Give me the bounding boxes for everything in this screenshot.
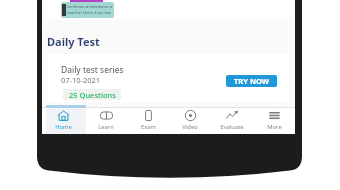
- staticText: Evaluate: [220, 123, 244, 131]
- staticText: 07-10-2021: [61, 75, 101, 85]
- staticText: Exam: [141, 123, 156, 131]
- staticText: Home: [55, 123, 72, 131]
- other: Home: [57, 110, 70, 121]
- other: Learn: [100, 110, 113, 121]
- other: Video: [184, 110, 197, 121]
- staticText: Daily test series: [61, 64, 124, 76]
- button[interactable]: Certificate of attendance is: [47, 0, 290, 20]
- other: Evaluate: [226, 110, 239, 121]
- button[interactable]: Daily test series: [48, 54, 289, 102]
- staticText: from here.: [67, 16, 85, 18]
- button[interactable]: Exam: [127, 107, 169, 134]
- other: More: [268, 110, 281, 121]
- staticText: 25 Questions: [69, 90, 116, 100]
- staticText: More: [267, 123, 282, 131]
- staticText: Learn: [98, 123, 114, 131]
- staticText: TRY NOW: [234, 76, 270, 86]
- button[interactable]: Evaluate: [211, 107, 253, 134]
- staticText: Certificate of attendance is: [67, 4, 113, 9]
- button[interactable]: Home: [42, 107, 85, 134]
- staticText: Video: [182, 123, 198, 131]
- button[interactable]: More: [253, 107, 295, 134]
- button[interactable]: Learn: [85, 107, 127, 134]
- button[interactable]: Video: [169, 107, 211, 134]
- button[interactable]: TRY NOW: [226, 75, 277, 87]
- staticText: Daily Test: [47, 34, 100, 49]
- staticText: now live! Check it out now: [67, 10, 111, 15]
- other: Exam: [142, 110, 155, 121]
